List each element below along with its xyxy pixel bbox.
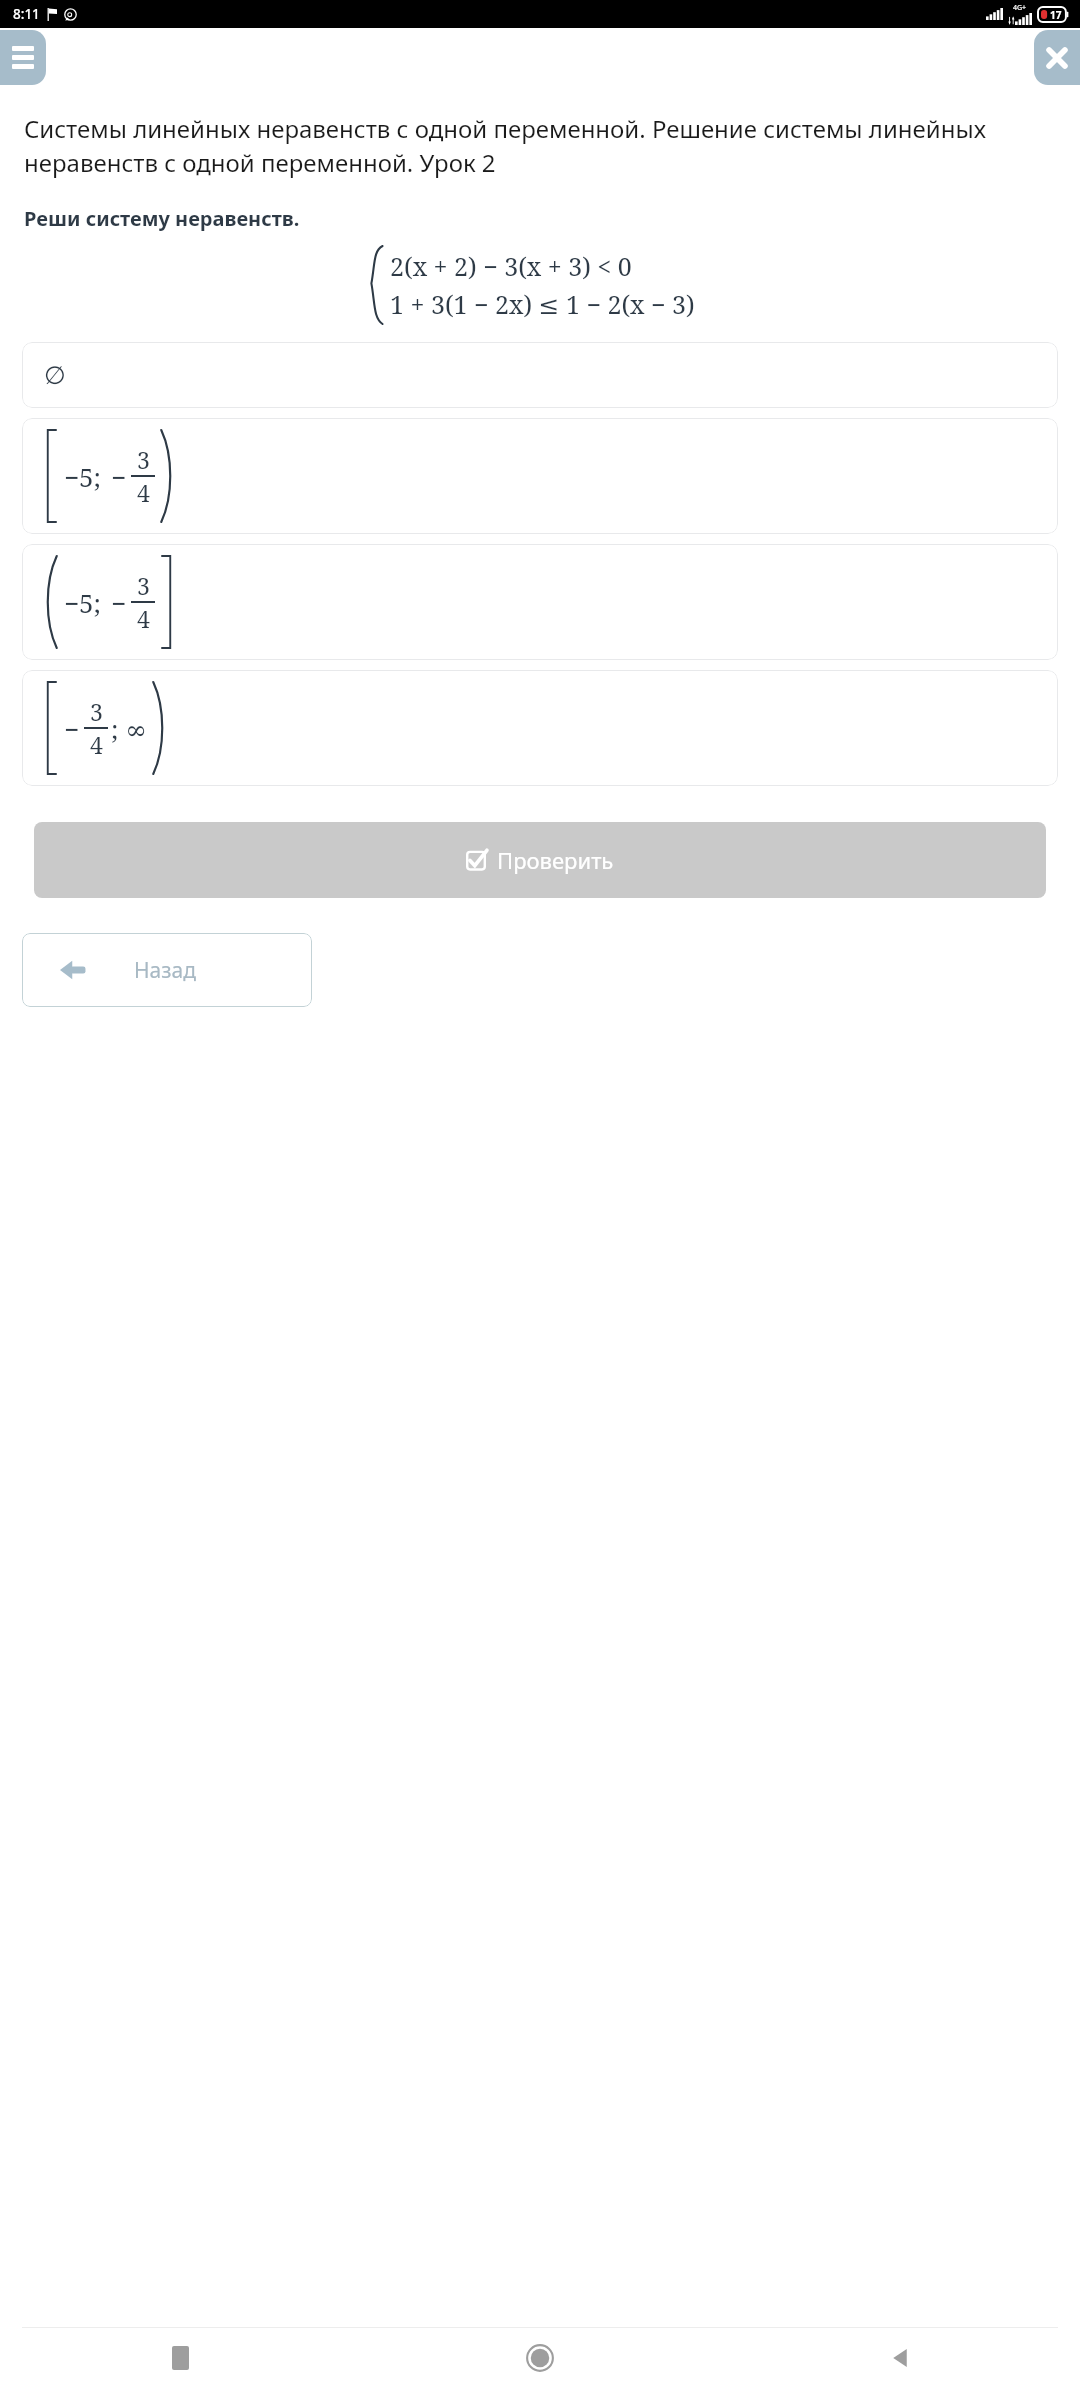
staticText: Реши систему неравенств. [24,205,1080,232]
staticText: ∅ [44,361,66,390]
staticText: Проверить [497,845,614,875]
staticText: − [111,459,127,494]
staticText: 4 [137,477,150,508]
staticText: 4 [137,603,150,634]
staticText: 3 [137,570,150,601]
staticText: − [64,711,80,746]
staticText: ; ∞ [111,711,147,746]
staticText: 4G+ [1013,3,1027,13]
button[interactable]: Close [1034,30,1080,85]
button[interactable]: Back [888,2346,912,2370]
staticText: 3 [90,696,103,727]
button[interactable]: Menu [0,30,46,85]
staticText: −5; [64,459,102,494]
staticText: 17 [1050,8,1062,22]
staticText: 1 + 3(1 − 2x) ≤ 1 − 2(x − 3) [390,287,695,321]
staticText: 8:11 [13,5,40,23]
button[interactable]: Recents [172,2346,189,2370]
staticText: −5; [64,585,102,620]
button[interactable]: ∅ [22,342,1058,408]
staticText: Назад [134,956,196,985]
button[interactable]: −5; [22,544,1058,660]
staticText: Системы линейных неравенств с одной пере… [24,112,1060,179]
button[interactable]: Проверить [34,822,1046,898]
button[interactable]: Назад [22,933,312,1007]
button[interactable]: Home [526,2344,554,2372]
button[interactable]: −5; [22,418,1058,534]
staticText: 2(x + 2) − 3(x + 3) < 0 [390,249,632,283]
staticText: 3 [137,444,150,475]
button[interactable]: − [22,670,1058,786]
staticText: − [111,585,127,620]
staticText: 4 [90,729,103,760]
